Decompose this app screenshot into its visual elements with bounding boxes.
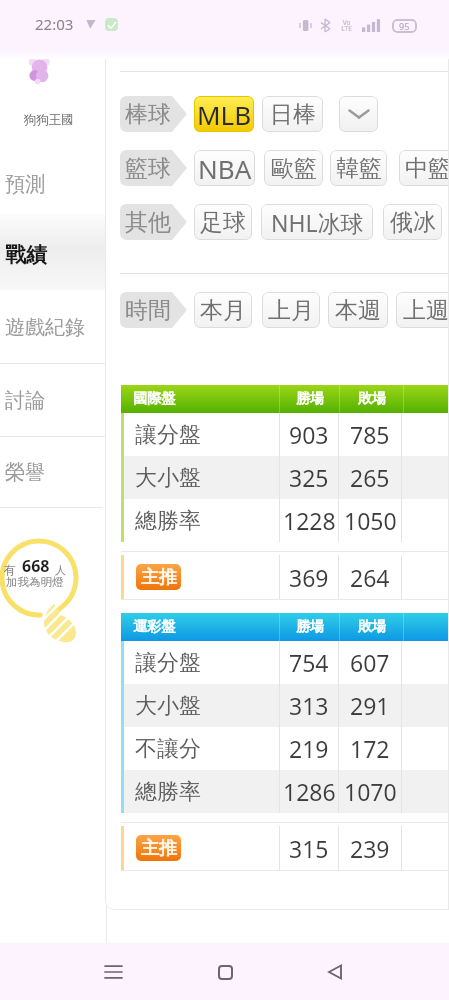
staticText: 戰績 — [5, 242, 47, 268]
button[interactable]: 日棒 — [262, 96, 323, 132]
staticText: 大小盤 — [135, 692, 201, 720]
button[interactable]: 俄冰 — [383, 204, 442, 240]
staticText: 籃球 — [125, 154, 171, 183]
button[interactable]: 上週 — [396, 292, 449, 328]
staticText: 加我為明燈 — [6, 575, 64, 589]
staticText: 291 — [350, 690, 390, 721]
staticText: 韓籃 — [336, 154, 382, 183]
button[interactable]: 總勝率 — [121, 499, 449, 542]
staticText: 敗場 — [358, 618, 386, 636]
button[interactable]: 主推 — [121, 555, 449, 599]
button[interactable]: 讓分盤 — [121, 413, 449, 456]
staticText: 1286 — [283, 776, 336, 807]
staticText: 本月 — [200, 296, 246, 325]
button[interactable]: 討論 — [0, 364, 107, 437]
button[interactable]: MLB — [194, 96, 254, 132]
button[interactable]: 其他 — [120, 204, 187, 240]
staticText: 265 — [350, 462, 390, 493]
button[interactable]: 上月 — [262, 292, 320, 328]
staticText: 國際盤 — [133, 390, 175, 408]
button[interactable]: 遊戲紀錄 — [0, 291, 107, 364]
staticText: 主推 — [141, 566, 177, 589]
staticText: 總勝率 — [135, 507, 201, 535]
button[interactable]: 歐籃 — [264, 150, 323, 186]
staticText: 上週 — [403, 296, 449, 325]
staticText: 勝場 — [296, 390, 324, 408]
staticText: 本週 — [335, 296, 381, 325]
button[interactable]: Home — [205, 952, 245, 992]
button[interactable]: 大小盤 — [121, 684, 449, 727]
staticText: 22:03 — [35, 14, 74, 34]
button[interactable]: 大小盤 — [121, 456, 449, 499]
staticText: 95 — [399, 20, 410, 32]
staticText: 315 — [289, 833, 329, 864]
staticText: 歐籃 — [271, 154, 317, 183]
staticText: 足球 — [200, 208, 246, 237]
staticText: 1050 — [344, 505, 397, 536]
staticText: NBA — [198, 151, 252, 186]
button[interactable]: 韓籃 — [330, 150, 387, 186]
staticText: 敗場 — [358, 390, 386, 408]
button[interactable]: 本週 — [328, 292, 388, 328]
staticText: 172 — [350, 733, 390, 764]
staticText: MLB — [197, 97, 252, 132]
button[interactable]: 讓分盤 — [121, 641, 449, 684]
button[interactable]: 總勝率 — [121, 770, 449, 813]
staticText: 313 — [289, 690, 329, 721]
button[interactable]: 棒球 — [120, 96, 187, 132]
staticText: 903 — [289, 419, 329, 450]
staticText: 人 — [55, 563, 66, 577]
staticText: 讓分盤 — [135, 649, 201, 677]
button[interactable]: Recent apps — [93, 952, 133, 992]
staticText: 時間 — [125, 296, 171, 325]
button[interactable]: NHL冰球 — [261, 204, 373, 240]
staticText: 上月 — [268, 296, 314, 325]
staticText: 219 — [289, 733, 329, 764]
staticText: Vo LTE — [341, 18, 352, 33]
staticText: 1070 — [344, 776, 397, 807]
staticText: 運彩盤 — [133, 618, 175, 636]
staticText: 主推 — [141, 837, 177, 860]
button[interactable]: NBA — [194, 150, 255, 186]
button[interactable]: 本月 — [194, 292, 252, 328]
staticText: 不讓分 — [135, 735, 201, 763]
staticText: NHL冰球 — [271, 207, 364, 238]
staticText: 607 — [350, 647, 390, 678]
button[interactable]: 戰績 — [0, 214, 107, 290]
staticText: 大小盤 — [135, 464, 201, 492]
staticText: 讓分盤 — [135, 421, 201, 449]
staticText: 785 — [350, 419, 390, 450]
staticText: 668 — [22, 555, 50, 577]
button[interactable]: 主推 — [121, 826, 449, 870]
button[interactable]: Back — [315, 952, 355, 992]
staticText: 325 — [289, 462, 329, 493]
staticText: 預測 — [5, 172, 45, 197]
staticText: 日棒 — [270, 100, 316, 129]
staticText: 討論 — [5, 388, 45, 413]
staticText: 有 — [4, 562, 16, 577]
button[interactable]: 不讓分 — [121, 727, 449, 770]
staticText: 遊戲紀錄 — [5, 315, 85, 340]
staticText: 俄冰 — [390, 208, 436, 237]
staticText: 總勝率 — [135, 778, 201, 806]
staticText: 264 — [350, 562, 390, 593]
staticText: 勝場 — [296, 618, 324, 636]
button[interactable]: 時間 — [120, 292, 187, 328]
button[interactable]: Expand league list — [339, 96, 378, 132]
staticText: 棒球 — [125, 100, 171, 129]
button[interactable]: 足球 — [194, 204, 252, 240]
staticText: 1228 — [283, 505, 336, 536]
staticText: 狗狗王國 — [0, 112, 97, 128]
staticText: 中籃 — [405, 154, 449, 183]
button[interactable]: 中籃 — [399, 150, 449, 186]
staticText: 其他 — [125, 208, 171, 237]
staticText: 榮譽 — [5, 460, 45, 485]
button[interactable]: 榮譽 — [0, 437, 107, 508]
staticText: 754 — [289, 647, 329, 678]
staticText: 369 — [289, 562, 329, 593]
button[interactable]: 籃球 — [120, 150, 187, 186]
staticText: 239 — [350, 833, 390, 864]
